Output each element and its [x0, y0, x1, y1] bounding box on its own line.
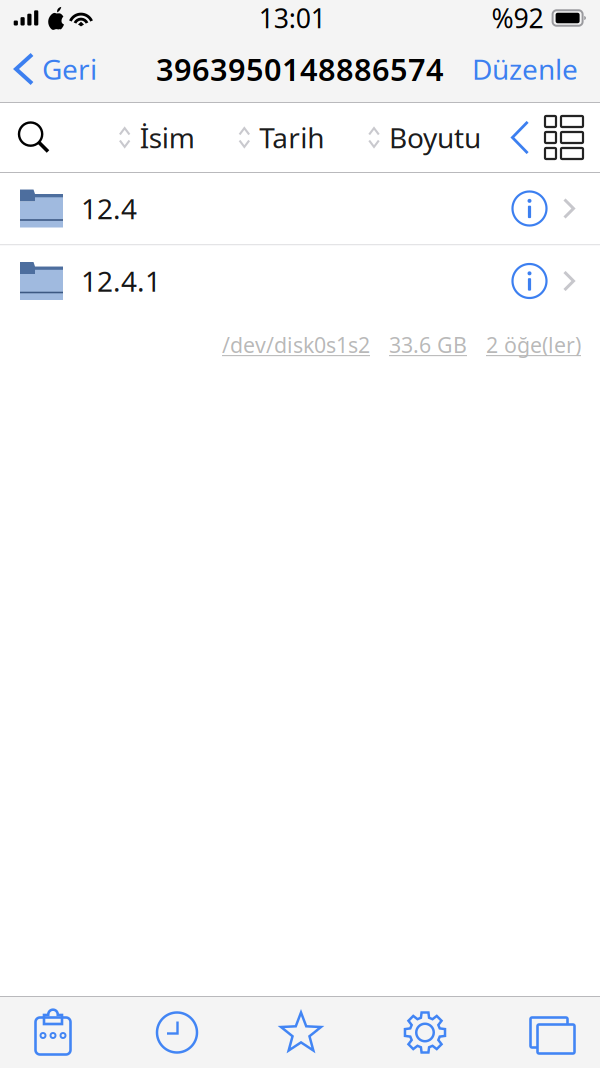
staticText: Düzenle [472, 50, 578, 88]
staticText: 2 öğe(ler) [486, 330, 581, 359]
staticText: Tarih [259, 119, 324, 156]
button[interactable]: Settings [375, 1009, 475, 1055]
staticText: İsim [140, 119, 195, 156]
button[interactable]: Geri [0, 42, 97, 96]
button[interactable]: Boyutu [366, 107, 483, 168]
staticText: 13:01 [259, 0, 326, 36]
button[interactable]: Windows [499, 1009, 599, 1055]
staticText: 12.4 [81, 190, 137, 227]
button[interactable]: İsim [117, 107, 197, 168]
button[interactable]: Recents [127, 1009, 227, 1055]
staticText: %92 [492, 0, 544, 36]
button[interactable]: Favorites [251, 1009, 351, 1055]
button[interactable]: Düzenle [472, 42, 600, 96]
button[interactable]: Previous [511, 112, 529, 162]
staticText: 33.6 GB [389, 330, 467, 359]
staticText: Boyutu [389, 119, 481, 156]
button[interactable]: Tarih [236, 107, 326, 168]
button[interactable]: View options [529, 108, 600, 167]
staticText: /dev/disk0s1s2 [222, 330, 370, 359]
button[interactable]: 12.4 [0, 173, 600, 244]
button[interactable]: 12.4.1 [0, 245, 600, 316]
button[interactable]: Clipboard [3, 1009, 103, 1055]
staticText: 12.4.1 [81, 262, 161, 300]
button[interactable]: Search [0, 110, 51, 164]
staticText: Geri [42, 50, 97, 88]
staticText: 3963950148886574 [156, 49, 444, 89]
